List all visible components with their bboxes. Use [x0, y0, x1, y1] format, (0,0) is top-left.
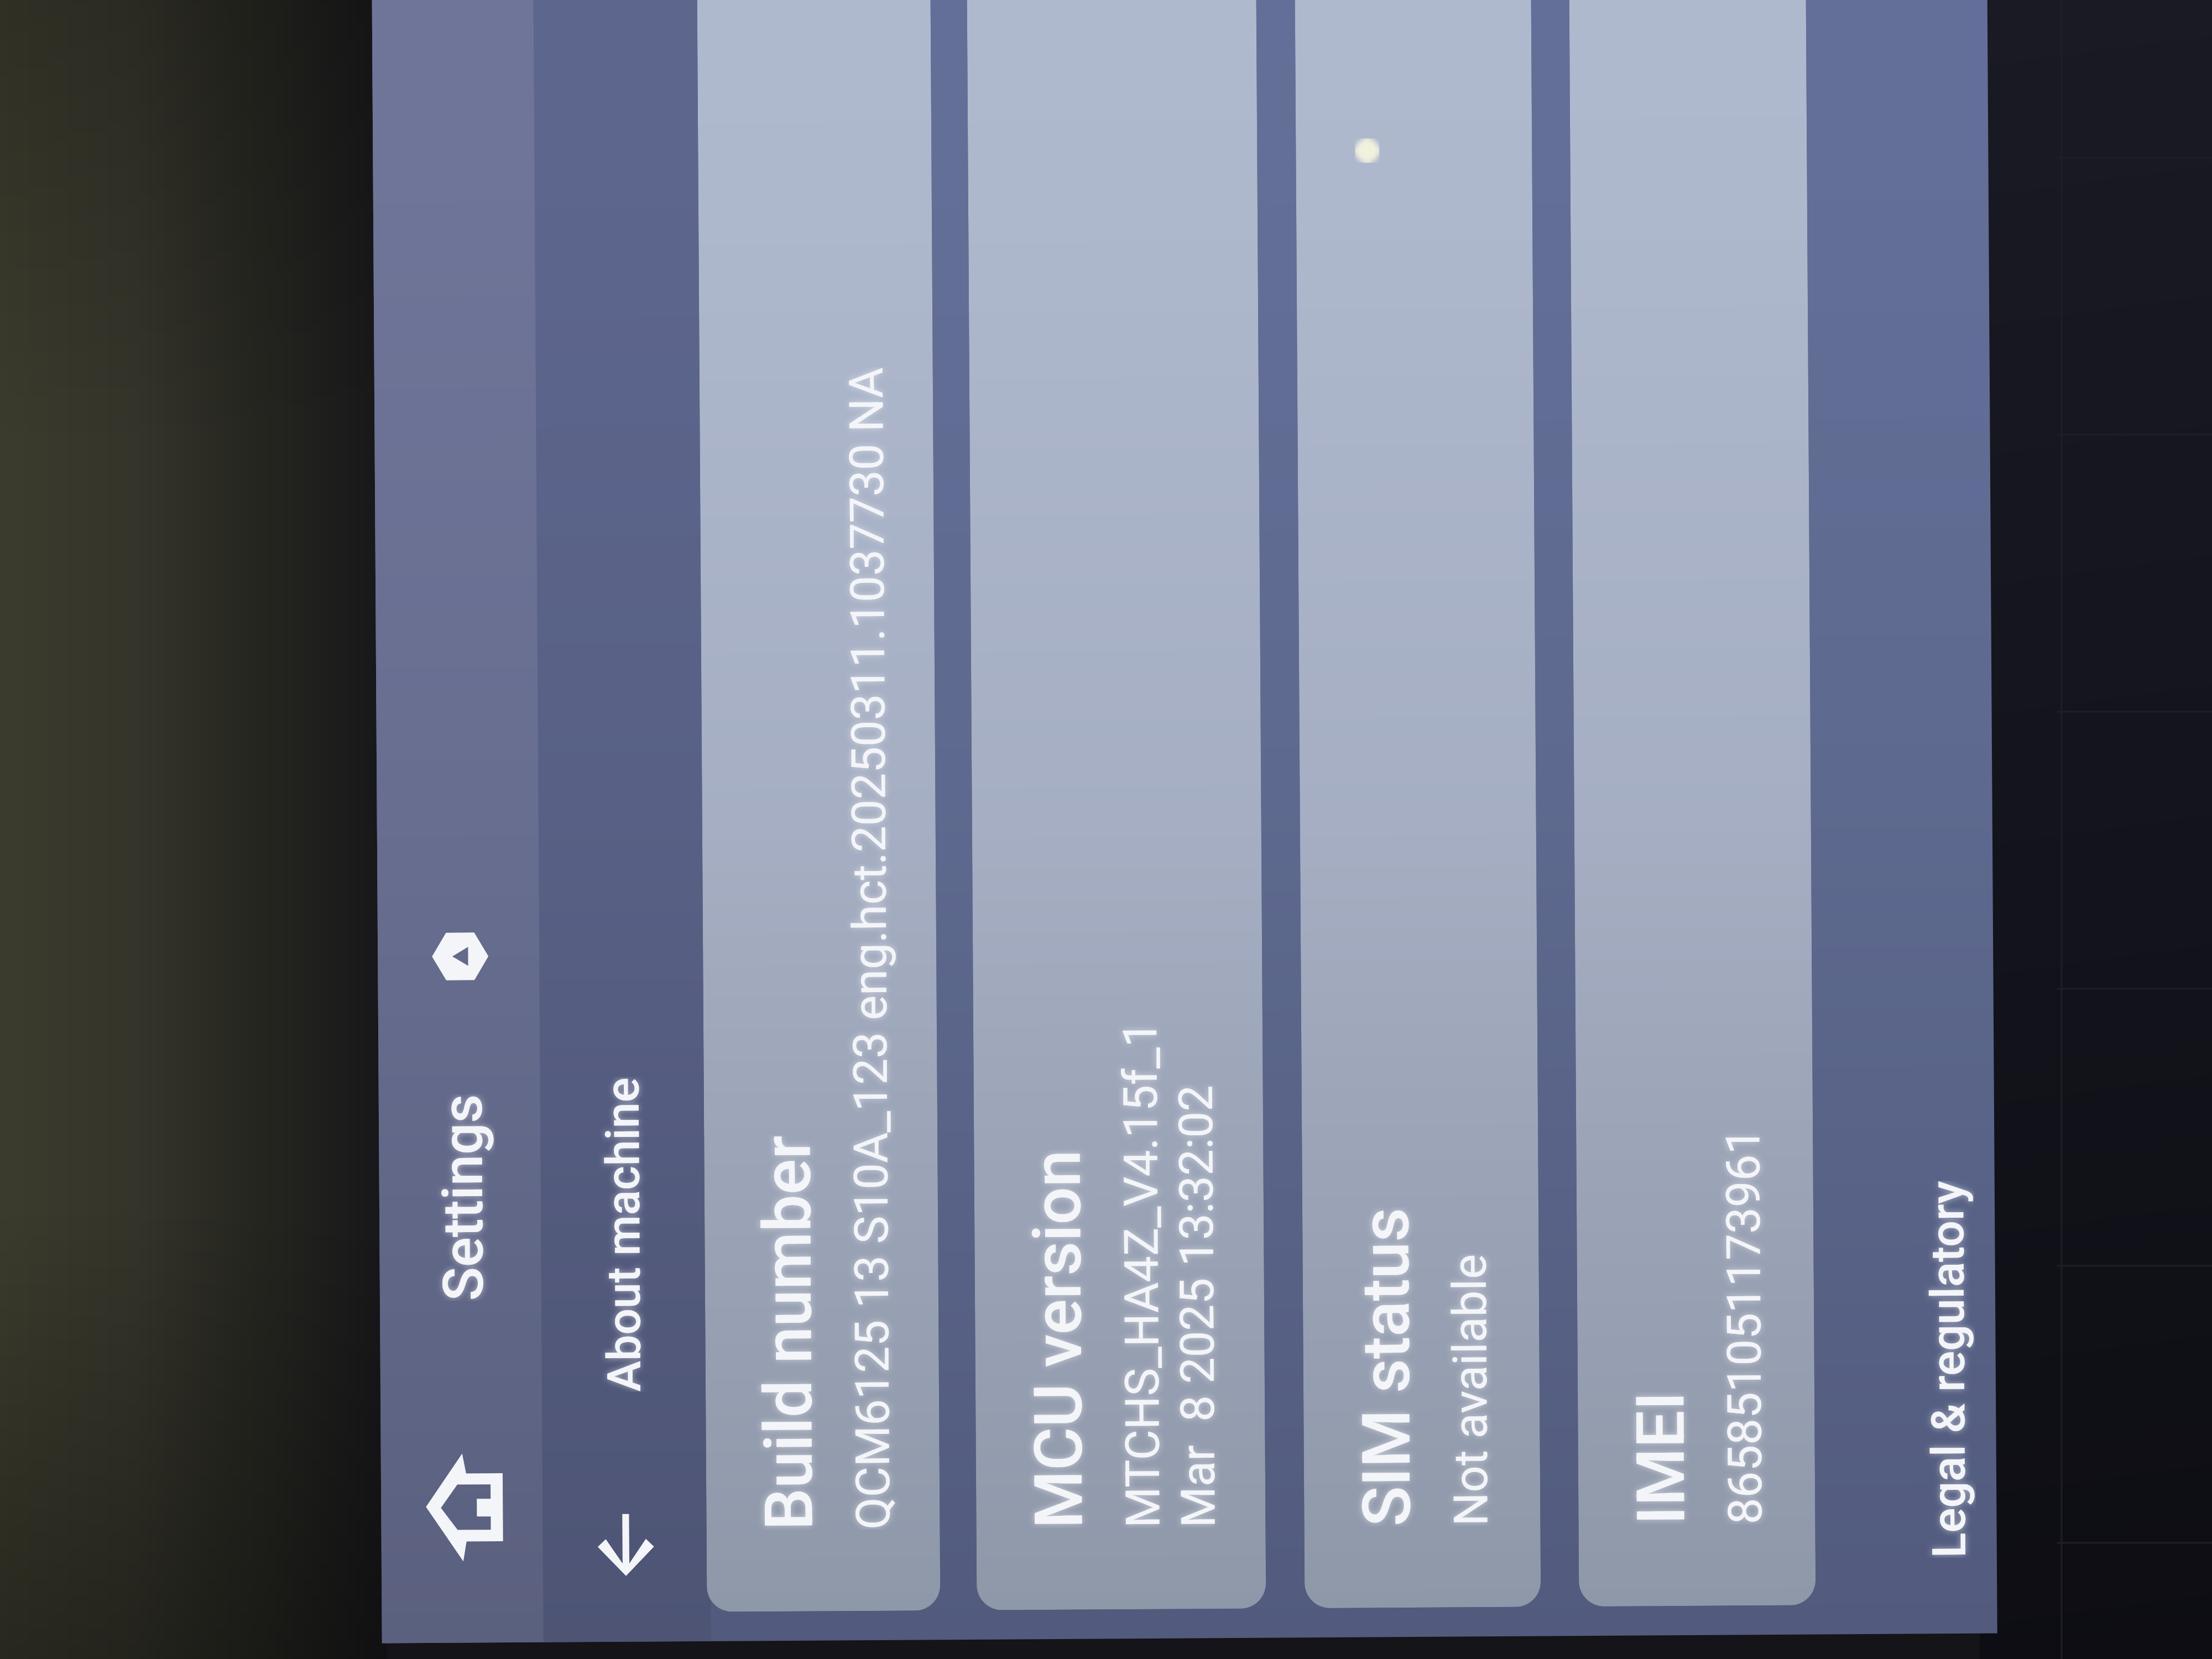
staticText: 865851051173961: [1715, 1128, 1773, 1524]
staticText: MCU version: [1018, 1149, 1099, 1529]
staticText: QCM6125 13 S10A_123 eng.hct.20250311.103…: [839, 367, 901, 1530]
staticText: Legal & regulatory: [1920, 1181, 1976, 1558]
staticText: Legal & regulatory: [1920, 1181, 1976, 1558]
button[interactable]: IMEI: [1568, 0, 1816, 1607]
staticText: QCM6125 13 S10A_123 eng.hct.20250311.103…: [839, 367, 901, 1530]
button[interactable]: SIM status: [1294, 0, 1541, 1608]
staticText: Settings: [430, 1094, 496, 1301]
staticText: 865851051173961: [1715, 1128, 1773, 1524]
staticText: MTCHS_HA4Z_V4.15f_1: [1113, 1021, 1171, 1528]
button[interactable]: Legal & regulatory: [1920, 1181, 1976, 1558]
button[interactable]: MCU version: [966, 0, 1266, 1610]
staticText: MTCHS_HA4Z_V4.15f_1: [1113, 1021, 1171, 1528]
staticText: Settings: [430, 1094, 496, 1301]
staticText: Build number: [748, 1135, 829, 1530]
staticText: Not available: [1442, 1254, 1499, 1526]
staticText: Not available: [1442, 1254, 1499, 1526]
staticText: IMEI: [1622, 1391, 1701, 1525]
staticText: Mar 8 2025 13:32:02: [1168, 1084, 1226, 1528]
staticText: About machine: [595, 1077, 651, 1392]
staticText: SIM status: [1347, 1207, 1426, 1527]
staticText: Build number: [748, 1135, 829, 1530]
staticText: About machine: [595, 1077, 651, 1392]
staticText: IMEI: [1622, 1391, 1701, 1525]
button[interactable]: Safety status: [432, 932, 489, 980]
staticText: MCU version: [1018, 1149, 1099, 1529]
button[interactable]: Navigate up: [596, 1514, 655, 1576]
button[interactable]: Back: [426, 1453, 503, 1562]
staticText: SIM status: [1347, 1207, 1426, 1527]
button[interactable]: Build number: [696, 0, 940, 1612]
staticText: Mar 8 2025 13:32:02: [1168, 1084, 1226, 1528]
